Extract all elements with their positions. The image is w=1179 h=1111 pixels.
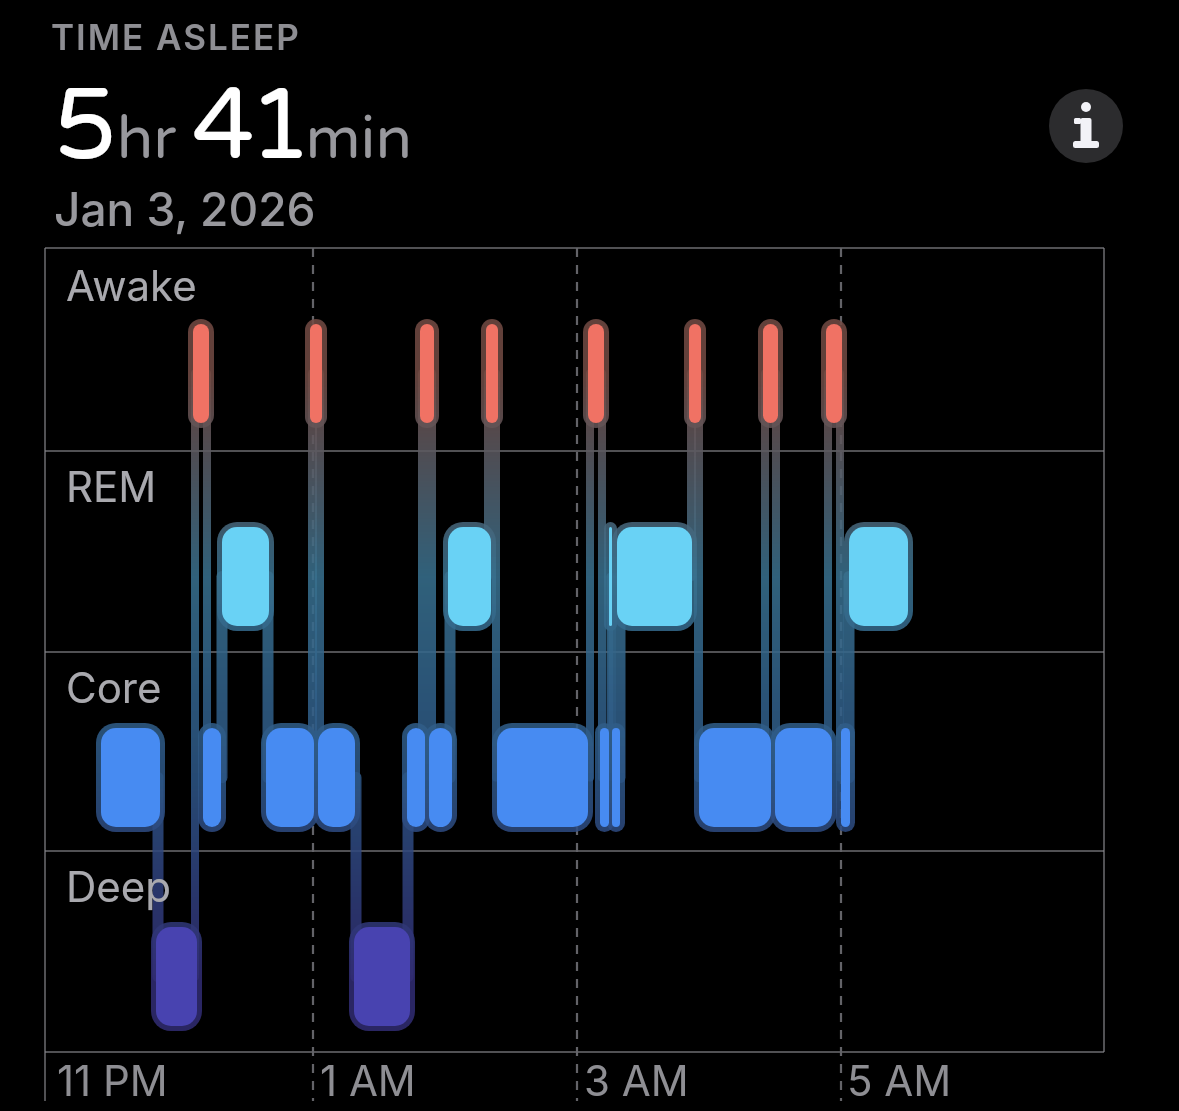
staticText: Core xyxy=(66,662,162,713)
button[interactable] xyxy=(1049,89,1123,163)
staticText: 11 PM xyxy=(57,1055,168,1106)
staticText: 5 AM xyxy=(847,1055,952,1106)
staticText: 5hr 41min xyxy=(54,66,413,186)
staticText: REM xyxy=(66,461,157,512)
staticText: Awake xyxy=(66,260,197,311)
staticText: 3 AM xyxy=(584,1055,689,1106)
staticText: TIME ASLEEP xyxy=(51,16,301,58)
staticText: Jan 3, 2026 xyxy=(54,181,316,237)
staticText: 1 AM xyxy=(320,1055,416,1106)
staticText: Deep xyxy=(66,861,171,912)
